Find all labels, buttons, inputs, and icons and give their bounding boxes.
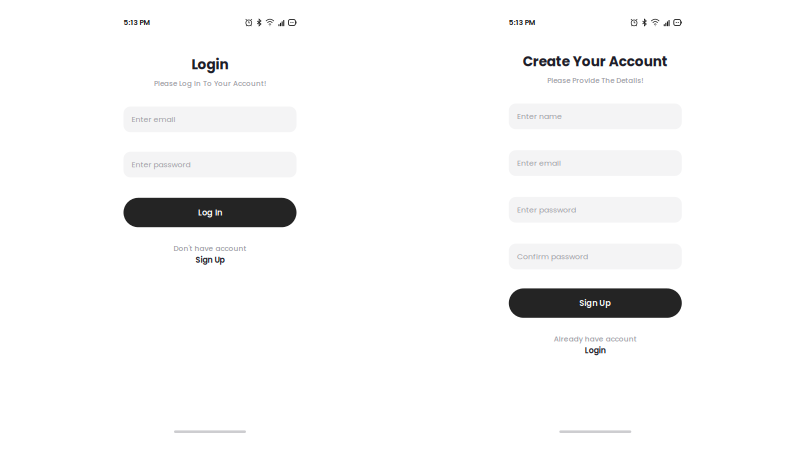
staticText: Enter email [517, 158, 561, 168]
button[interactable]: Enter email [123, 106, 296, 132]
staticText: Enter email [132, 114, 176, 125]
staticText: Already have account [554, 334, 637, 344]
staticText: Please Provide The Details! [547, 75, 643, 85]
button[interactable]: Sign Up [185, 252, 234, 268]
staticText: Login [191, 55, 228, 74]
button[interactable]: Confirm password [509, 244, 682, 269]
staticText: Please Log In To Your Account! [154, 78, 266, 88]
staticText: 5:13 PM [123, 17, 149, 28]
staticText: Enter password [517, 204, 576, 215]
button[interactable]: Sign Up [509, 288, 682, 318]
staticText: 5:13 PM [509, 17, 535, 28]
staticText: Enter name [517, 111, 562, 122]
staticText: Confirm password [517, 251, 588, 262]
button[interactable]: Enter name [509, 103, 682, 129]
button[interactable]: Enter password [123, 152, 296, 177]
button[interactable]: Login [575, 343, 616, 359]
button[interactable]: Enter email [509, 150, 682, 176]
staticText: Create Your Account [523, 52, 668, 71]
staticText: Don't have account [173, 243, 246, 253]
button[interactable]: Log In [123, 198, 296, 227]
staticText: Enter password [132, 159, 191, 170]
staticText: Sign Up [579, 297, 611, 309]
staticText: Login [585, 345, 606, 356]
staticText: Sign Up [195, 254, 224, 265]
staticText: Log In [198, 207, 222, 218]
button[interactable]: Enter password [509, 197, 682, 223]
